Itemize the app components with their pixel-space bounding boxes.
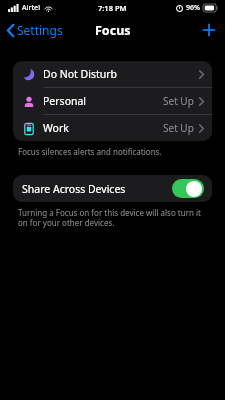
staticText: Share Across Devices (22, 182, 126, 196)
staticText: 96% (186, 3, 200, 13)
staticText: Settings (17, 22, 63, 38)
staticText: Turning a Focus on for this device will … (18, 207, 205, 228)
staticText: Focus (95, 22, 131, 39)
staticText: Work (43, 121, 69, 135)
button[interactable]: Add Focus (193, 18, 225, 42)
staticText: Set Up (163, 121, 194, 135)
button[interactable]: Personal (13, 88, 212, 114)
staticText: Personal (43, 94, 87, 108)
button[interactable]: Settings (0, 18, 71, 42)
staticText: 7:18 PM (98, 3, 127, 13)
staticText: Do Not Disturb (43, 67, 118, 81)
other: Share Across Devices toggle, on (172, 179, 204, 198)
button[interactable]: Work (13, 115, 212, 141)
staticText: Set Up (163, 94, 194, 108)
button[interactable]: Do Not Disturb (13, 61, 212, 87)
button[interactable]: Share Across Devices (13, 175, 212, 202)
staticText: Focus silences alerts and notifications. (18, 146, 162, 157)
staticText: Airtel (22, 3, 41, 13)
